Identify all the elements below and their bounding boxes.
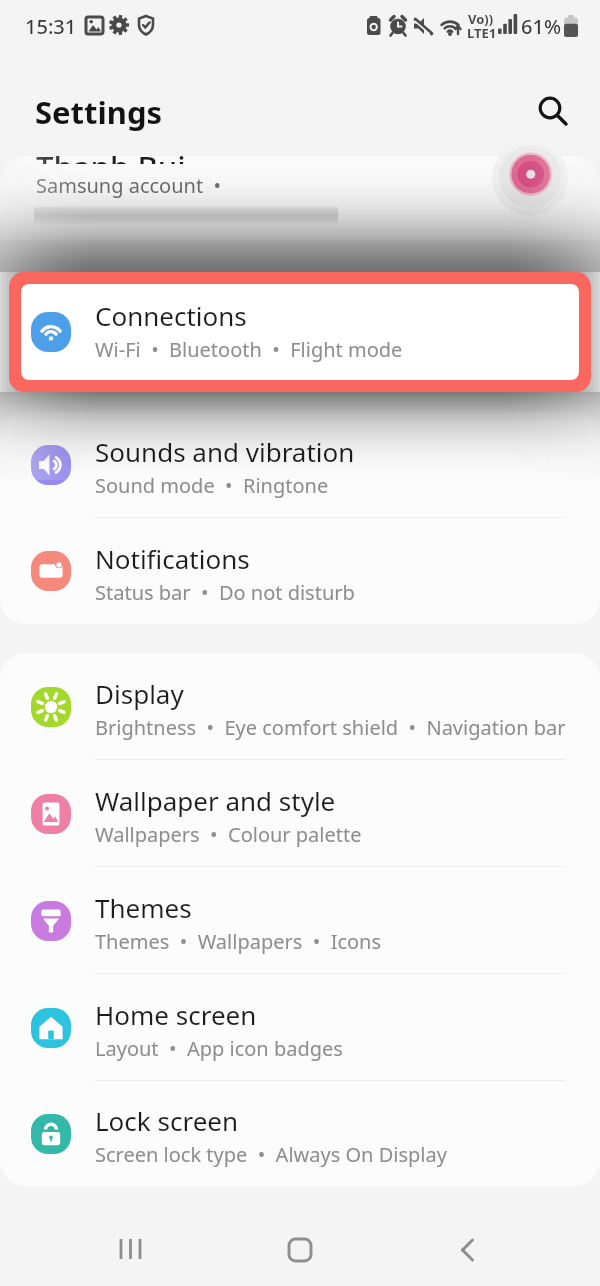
staticText: Wallpapers • Colour palette — [95, 821, 362, 848]
staticText: Layout • App icon badges — [95, 1035, 343, 1062]
button[interactable]: Display — [0, 653, 600, 760]
staticText: Themes — [95, 890, 192, 925]
staticText: Notifications — [95, 541, 250, 576]
staticText: Sound mode • Ringtone — [95, 472, 329, 499]
staticText: Wi-Fi • Bluetooth • Flight mode — [95, 336, 403, 363]
button[interactable]: Recent apps — [107, 1224, 159, 1276]
button[interactable]: Themes — [0, 867, 600, 974]
button[interactable]: Sounds and vibration — [0, 411, 600, 518]
staticText: Vo)) — [468, 10, 494, 28]
button[interactable]: Notifications — [0, 518, 600, 624]
button[interactable]: Lock screen — [0, 1081, 600, 1186]
staticText: Home screen — [95, 997, 257, 1032]
staticText: Wallpaper and style — [95, 783, 336, 818]
staticText: Brightness • Eye comfort shield • Naviga… — [95, 714, 566, 741]
button[interactable]: Samsung account • — [0, 172, 600, 202]
staticText: Thanh Bui — [36, 148, 186, 164]
button[interactable]: Home screen — [0, 974, 600, 1081]
staticText: Screen lock type • Always On Display — [95, 1141, 447, 1168]
staticText: Connections — [95, 298, 247, 333]
staticText: Themes • Wallpapers • Icons — [95, 928, 382, 955]
button[interactable]: Back — [441, 1224, 493, 1276]
staticText: LTE1 — [467, 24, 497, 42]
button[interactable]: Search — [522, 80, 578, 136]
staticText: Display — [95, 676, 184, 711]
staticText: Samsung account • — [36, 172, 222, 199]
button[interactable]: Wallpaper and style — [0, 760, 600, 867]
staticText: Settings — [35, 91, 163, 133]
button[interactable]: Home — [274, 1224, 326, 1276]
staticText: Lock screen — [95, 1103, 239, 1138]
staticText: Sounds and vibration — [95, 434, 355, 469]
staticText: Status bar • Do not disturb — [95, 579, 355, 606]
staticText: 61% — [521, 13, 561, 40]
button[interactable]: Profile picture — [492, 140, 568, 216]
staticText: 15:31 — [25, 13, 77, 40]
button[interactable]: Connections — [9, 272, 591, 392]
